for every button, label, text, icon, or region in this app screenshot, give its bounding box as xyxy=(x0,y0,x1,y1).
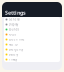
button[interactable]: Privacy xyxy=(4,57,60,62)
button[interactable]: Screen Time xyxy=(4,37,60,42)
staticText: Settings xyxy=(5,9,26,16)
button[interactable]: Focus xyxy=(4,32,60,37)
button[interactable]: Face ID xyxy=(4,42,60,47)
staticText: Focus xyxy=(9,33,16,36)
staticText: Display xyxy=(9,23,18,26)
staticText: Privacy xyxy=(9,58,17,61)
staticText: Battery xyxy=(9,53,18,56)
staticText: General xyxy=(9,18,20,21)
button[interactable]: Sounds xyxy=(4,27,60,32)
staticText: Face ID xyxy=(9,43,18,46)
staticText: Emergency xyxy=(9,48,23,51)
button[interactable]: Emergency xyxy=(4,47,60,52)
button[interactable]: Display xyxy=(4,22,60,27)
button[interactable]: General xyxy=(4,17,60,22)
staticText: Sounds xyxy=(9,28,19,31)
button[interactable]: Battery xyxy=(4,52,60,57)
staticText: Screen Time xyxy=(9,38,25,41)
